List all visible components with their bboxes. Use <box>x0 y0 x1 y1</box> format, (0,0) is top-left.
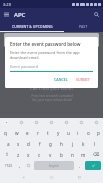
staticText: e <box>26 130 29 136</box>
button[interactable]: GIF <box>33 119 40 126</box>
staticText: t <box>47 130 49 136</box>
button[interactable]: PAST <box>64 21 103 32</box>
staticText: v <box>49 152 52 158</box>
button[interactable]: t <box>43 127 53 138</box>
staticText: c <box>38 152 41 158</box>
button[interactable]: a <box>3 138 13 149</box>
button[interactable]: Shift <box>0 149 13 160</box>
button[interactable]: Association of Pathology Chairs <box>4 33 99 47</box>
button[interactable]: Emoji <box>24 161 33 170</box>
button[interactable]: s <box>13 138 23 149</box>
button[interactable]: CANCEL <box>51 75 71 84</box>
staticText: n <box>71 152 74 158</box>
button[interactable]: k <box>78 138 89 149</box>
staticText: ?123 <box>5 164 12 168</box>
button[interactable]: SUBMIT <box>73 75 93 84</box>
button[interactable]: Recents <box>75 173 84 182</box>
staticText: , <box>19 163 21 169</box>
staticText: ⇧ <box>5 152 9 157</box>
button[interactable]: l <box>89 138 100 149</box>
staticText: SUBMIT <box>76 77 90 82</box>
staticText: y <box>57 130 60 136</box>
staticText: m <box>81 152 86 158</box>
button[interactable]: h <box>56 138 67 149</box>
button[interactable]: m <box>78 149 89 160</box>
staticText: j <box>72 141 74 147</box>
staticText: x <box>27 152 30 158</box>
button[interactable]: Comma <box>15 161 24 170</box>
button[interactable]: o <box>83 127 93 138</box>
button[interactable]: z <box>13 149 23 160</box>
button[interactable]: Clipboard <box>63 119 70 126</box>
staticText: English <box>49 164 59 168</box>
staticText: PAST <box>79 24 88 29</box>
staticText: l <box>94 141 96 147</box>
staticText: Can't find your event? <box>30 86 74 92</box>
staticText: ⌫ <box>93 152 100 157</box>
button[interactable]: b <box>56 149 67 160</box>
button[interactable]: Open navigation menu <box>2 10 11 19</box>
button[interactable]: Search <box>92 10 101 19</box>
staticText: o <box>87 130 90 136</box>
staticText: Press here to search a provided link, yo… <box>31 94 73 102</box>
staticText: . <box>79 163 81 169</box>
button[interactable]: Home <box>47 173 56 182</box>
staticText: f <box>39 141 41 147</box>
button[interactable]: Event password <box>10 64 93 72</box>
button[interactable]: r <box>33 127 43 138</box>
staticText: q <box>4 130 7 136</box>
staticText: APC <box>14 11 26 19</box>
button[interactable]: f <box>34 138 45 149</box>
button[interactable]: n <box>67 149 78 160</box>
staticText: s <box>17 141 20 147</box>
staticText: w <box>15 130 19 136</box>
staticText: Enter the event password from the app do… <box>10 50 80 60</box>
staticText: r <box>37 130 39 136</box>
button[interactable]: q <box>0 127 11 138</box>
button[interactable]: u <box>63 127 73 138</box>
button[interactable]: Back <box>19 173 28 182</box>
staticText: CANCEL <box>54 77 68 82</box>
button[interactable]: e <box>22 127 33 138</box>
staticText: a <box>7 141 10 147</box>
button[interactable]: i <box>73 127 83 138</box>
button[interactable]: Enter <box>85 161 101 170</box>
button[interactable]: Settings <box>18 119 25 126</box>
staticText: h <box>60 141 63 147</box>
button[interactable]: Space <box>34 161 74 170</box>
button[interactable]: Voice input <box>93 119 100 126</box>
staticText: 3:20 <box>3 2 11 7</box>
staticText: k <box>82 141 85 147</box>
button[interactable]: p <box>93 127 103 138</box>
button[interactable]: Search <box>3 119 10 126</box>
staticText: z <box>17 152 20 158</box>
button[interactable]: j <box>67 138 78 149</box>
staticText: Enter the event password below <box>10 41 81 47</box>
button[interactable]: Period <box>75 161 84 170</box>
button[interactable]: d <box>23 138 34 149</box>
staticText: i <box>77 130 79 136</box>
staticText: d <box>27 141 30 147</box>
staticText: p <box>97 130 100 136</box>
button[interactable]: Backspace <box>89 149 103 160</box>
staticText: g <box>49 141 52 147</box>
button[interactable]: g <box>45 138 56 149</box>
staticText: u <box>67 130 70 136</box>
button[interactable]: CURRENT & UPCOMING <box>0 21 64 32</box>
staticText: b <box>60 152 63 158</box>
button[interactable]: v <box>45 149 56 160</box>
button[interactable]: Symbols <box>1 161 15 170</box>
button[interactable]: x <box>23 149 34 160</box>
button[interactable]: Sticker <box>48 119 55 126</box>
button[interactable]: c <box>34 149 45 160</box>
staticText: Event password <box>10 64 39 69</box>
button[interactable]: y <box>53 127 63 138</box>
button[interactable]: More options <box>78 119 85 126</box>
staticText: CURRENT & UPCOMING <box>12 24 53 29</box>
button[interactable]: w <box>11 127 22 138</box>
